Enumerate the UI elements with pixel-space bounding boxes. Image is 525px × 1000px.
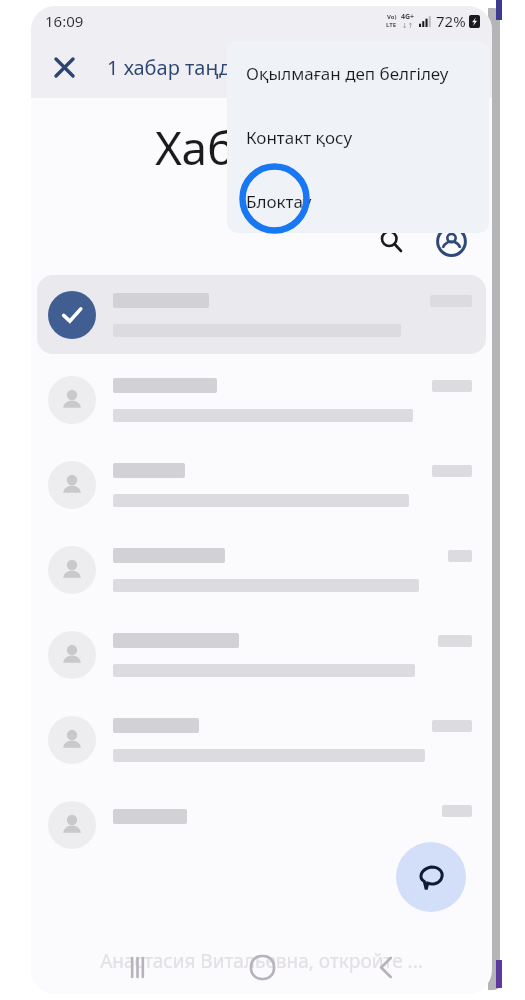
button[interactable]: Контакт қосу [227, 105, 489, 169]
button[interactable]: Оқылмаған деп белгілеу [227, 41, 489, 105]
button[interactable]: Back [364, 945, 408, 989]
staticText: 72% [436, 11, 466, 31]
button[interactable]: Close selection [43, 46, 85, 88]
button[interactable] [37, 615, 486, 694]
button[interactable]: Recents [115, 945, 159, 989]
button[interactable]: New conversation [396, 842, 466, 912]
staticText: Блоктау [246, 190, 312, 213]
staticText: Vo) [387, 13, 397, 21]
staticText: Хабарлар [155, 116, 369, 179]
button[interactable] [37, 700, 486, 779]
button[interactable] [37, 275, 486, 354]
button[interactable]: Account [428, 218, 474, 264]
staticText: LTE [386, 21, 397, 29]
button[interactable]: Search [368, 218, 414, 264]
staticText: 16:09 [45, 11, 84, 31]
button[interactable] [37, 530, 486, 609]
button[interactable]: Блоктау [227, 169, 489, 233]
button[interactable]: Home [240, 945, 284, 989]
staticText: 4G+ [401, 12, 415, 22]
staticText: Оқылмаған деп белгілеу [246, 62, 449, 85]
button[interactable] [37, 445, 486, 524]
staticText: 1 хабар таңдалды [107, 54, 282, 81]
staticText: ↓↑ [402, 22, 414, 30]
staticText: Контакт қосу [246, 126, 353, 149]
staticText: Анастасия Витальевна, откройте ... [31, 948, 492, 974]
button[interactable] [37, 785, 486, 864]
button[interactable] [37, 360, 486, 439]
